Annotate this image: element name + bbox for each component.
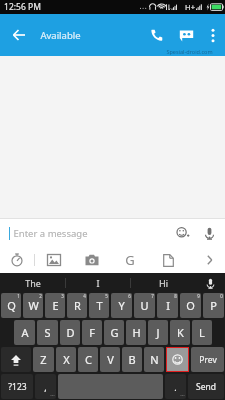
button[interactable]: More options (201, 14, 225, 56)
staticText: 9 (197, 293, 200, 299)
button[interactable]: Video call (171, 14, 201, 56)
button[interactable]: Voice typing (195, 273, 225, 293)
staticText: Send (196, 381, 216, 393)
button[interactable]: B (122, 347, 142, 372)
button[interactable]: T (89, 293, 109, 318)
button[interactable]: R (67, 293, 87, 318)
button[interactable]: ?123 (1, 374, 33, 399)
button[interactable]: E (45, 293, 65, 318)
button[interactable]: Camera (73, 247, 111, 273)
staticText: . (174, 381, 177, 393)
staticText: R (74, 298, 81, 313)
staticText: Enter a message (13, 227, 88, 240)
button[interactable]: Gallery (35, 247, 73, 273)
staticText: 1 (17, 293, 20, 299)
staticText: Spesial-droid.com (166, 48, 213, 55)
button[interactable]: X (56, 347, 76, 372)
button[interactable]: I (66, 273, 130, 293)
staticText: O (186, 298, 195, 313)
button[interactable]: U (134, 293, 155, 318)
button[interactable]: . (165, 374, 186, 399)
button[interactable]: H (126, 320, 146, 345)
staticText: L (199, 325, 205, 340)
staticText: Hi (159, 277, 168, 289)
staticText: Prev (199, 354, 217, 366)
button[interactable]: Emoji (170, 219, 196, 247)
button[interactable]: Prev (191, 347, 224, 372)
button[interactable]: D (60, 320, 80, 345)
button[interactable]: Hi (131, 273, 195, 293)
button[interactable]: C (78, 347, 98, 372)
button[interactable]: Google search (111, 247, 149, 273)
button[interactable]: Attach file (149, 247, 187, 273)
button[interactable]: V (100, 347, 120, 372)
staticText: D (66, 325, 75, 340)
button[interactable]: More attachments (197, 247, 223, 273)
button[interactable]: J (148, 320, 168, 345)
button[interactable]: G (104, 320, 124, 345)
staticText: I (96, 277, 100, 289)
staticText: The (25, 277, 41, 289)
button[interactable]: Timer (0, 247, 34, 273)
staticText: S (44, 325, 51, 340)
button[interactable]: Z (33, 347, 54, 372)
staticText: W (28, 298, 39, 313)
button[interactable]: Send (188, 374, 224, 399)
staticText: 7 (151, 293, 154, 299)
staticText: ?123 (8, 381, 27, 393)
staticText: Z (40, 352, 47, 367)
staticText: I (166, 298, 170, 313)
button[interactable]: Back (0, 14, 38, 56)
staticText: ⋯ (180, 393, 185, 398)
button[interactable]: Call (143, 14, 171, 56)
staticText: G (125, 251, 135, 269)
button[interactable]: Emoji keyboard (167, 348, 188, 371)
staticText: H (132, 325, 141, 340)
button[interactable]: Enter a message (0, 219, 225, 247)
staticText: Q (7, 298, 16, 313)
staticText: F (89, 325, 95, 340)
button[interactable]: N (144, 347, 164, 372)
staticText: 6 (128, 293, 131, 299)
button[interactable]: A (14, 320, 35, 345)
staticText: 3 (61, 293, 64, 299)
button[interactable]: , (35, 374, 56, 399)
staticText: E (52, 298, 59, 313)
staticText: Y (118, 298, 125, 313)
staticText: , (44, 381, 47, 393)
button[interactable]: S (37, 320, 58, 345)
button[interactable]: P (203, 293, 224, 318)
staticText: 12:56 PM (4, 1, 41, 13)
staticText: 8 (174, 293, 177, 299)
staticText: ⋯ (50, 393, 55, 398)
staticText: N (150, 352, 159, 367)
staticText: H+ (185, 2, 195, 12)
button[interactable]: K (170, 320, 190, 345)
staticText: K (177, 325, 184, 340)
button[interactable]: Q (1, 293, 21, 318)
button[interactable]: Available (38, 29, 83, 42)
staticText: A (21, 325, 29, 340)
button[interactable]: The (0, 273, 65, 293)
button[interactable]: Shift (1, 347, 31, 372)
button[interactable]: Y (111, 293, 132, 318)
staticText: 0 (220, 293, 223, 299)
staticText: V (107, 352, 114, 367)
staticText: J (156, 325, 160, 340)
staticText: 2 (39, 293, 42, 299)
staticText: C (85, 352, 92, 367)
button[interactable]: I (157, 293, 178, 318)
button[interactable]: Voice input (196, 219, 222, 247)
button[interactable]: L (192, 320, 212, 345)
staticText: X (63, 352, 70, 367)
staticText: G (110, 325, 119, 340)
button[interactable]: O (180, 293, 201, 318)
staticText: P (210, 298, 217, 313)
button[interactable]: W (23, 293, 43, 318)
button[interactable]: F (82, 320, 102, 345)
staticText: U (140, 298, 149, 313)
staticText: 4 (83, 293, 86, 299)
staticText: B (128, 352, 136, 367)
staticText: 5 (105, 293, 108, 299)
